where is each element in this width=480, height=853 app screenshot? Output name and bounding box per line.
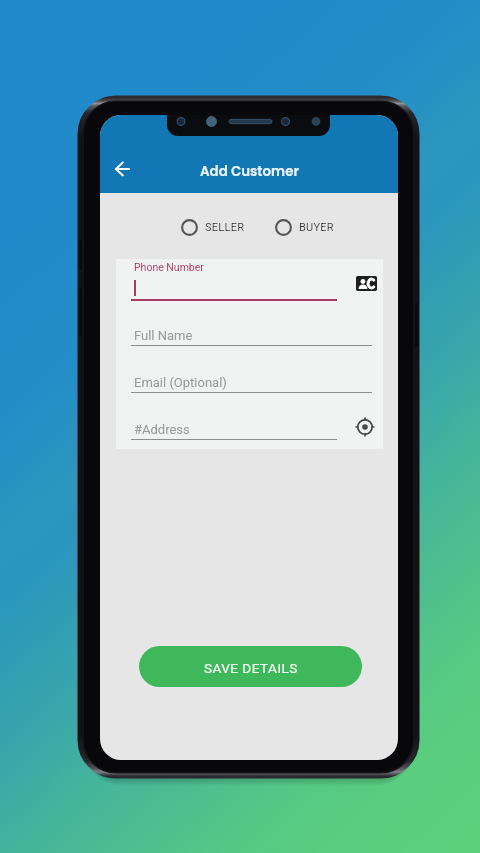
staticText: Full Name [134, 328, 193, 343]
button[interactable]: BUYER [272, 216, 337, 239]
button[interactable]: Back [106, 153, 138, 185]
staticText: Email (Optional) [134, 375, 227, 390]
staticText: #Address [134, 422, 190, 437]
staticText: BUYER [299, 221, 334, 234]
button[interactable]: Pick from contacts [351, 270, 381, 296]
button[interactable]: Use my location [352, 414, 378, 440]
staticText: SELLER [205, 221, 245, 234]
button[interactable]: SELLER [178, 216, 248, 239]
button[interactable]: SAVE DETAILS [139, 646, 362, 687]
staticText: Phone Number [134, 261, 204, 273]
staticText: Add Customer [200, 162, 299, 181]
staticText: SAVE DETAILS [204, 660, 298, 676]
